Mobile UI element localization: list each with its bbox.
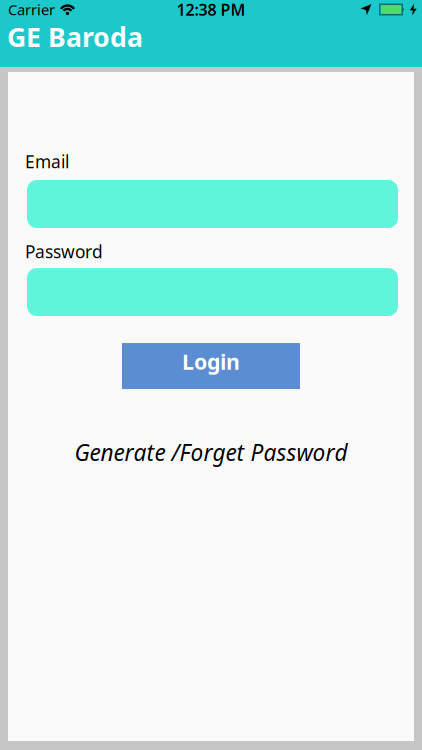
button[interactable]: Login [122, 343, 300, 389]
staticText: Carrier [8, 0, 55, 19]
staticText: Password [25, 240, 103, 263]
staticText: Login [182, 347, 240, 376]
staticText: GE Baroda [7, 19, 143, 54]
button[interactable]: Generate /Forget Password [74, 437, 347, 467]
button[interactable] [27, 268, 398, 316]
staticText: Generate /Forget Password [74, 437, 347, 467]
button[interactable] [27, 180, 398, 228]
staticText: Email [25, 150, 69, 173]
staticText: 12:38 PM [176, 0, 245, 20]
